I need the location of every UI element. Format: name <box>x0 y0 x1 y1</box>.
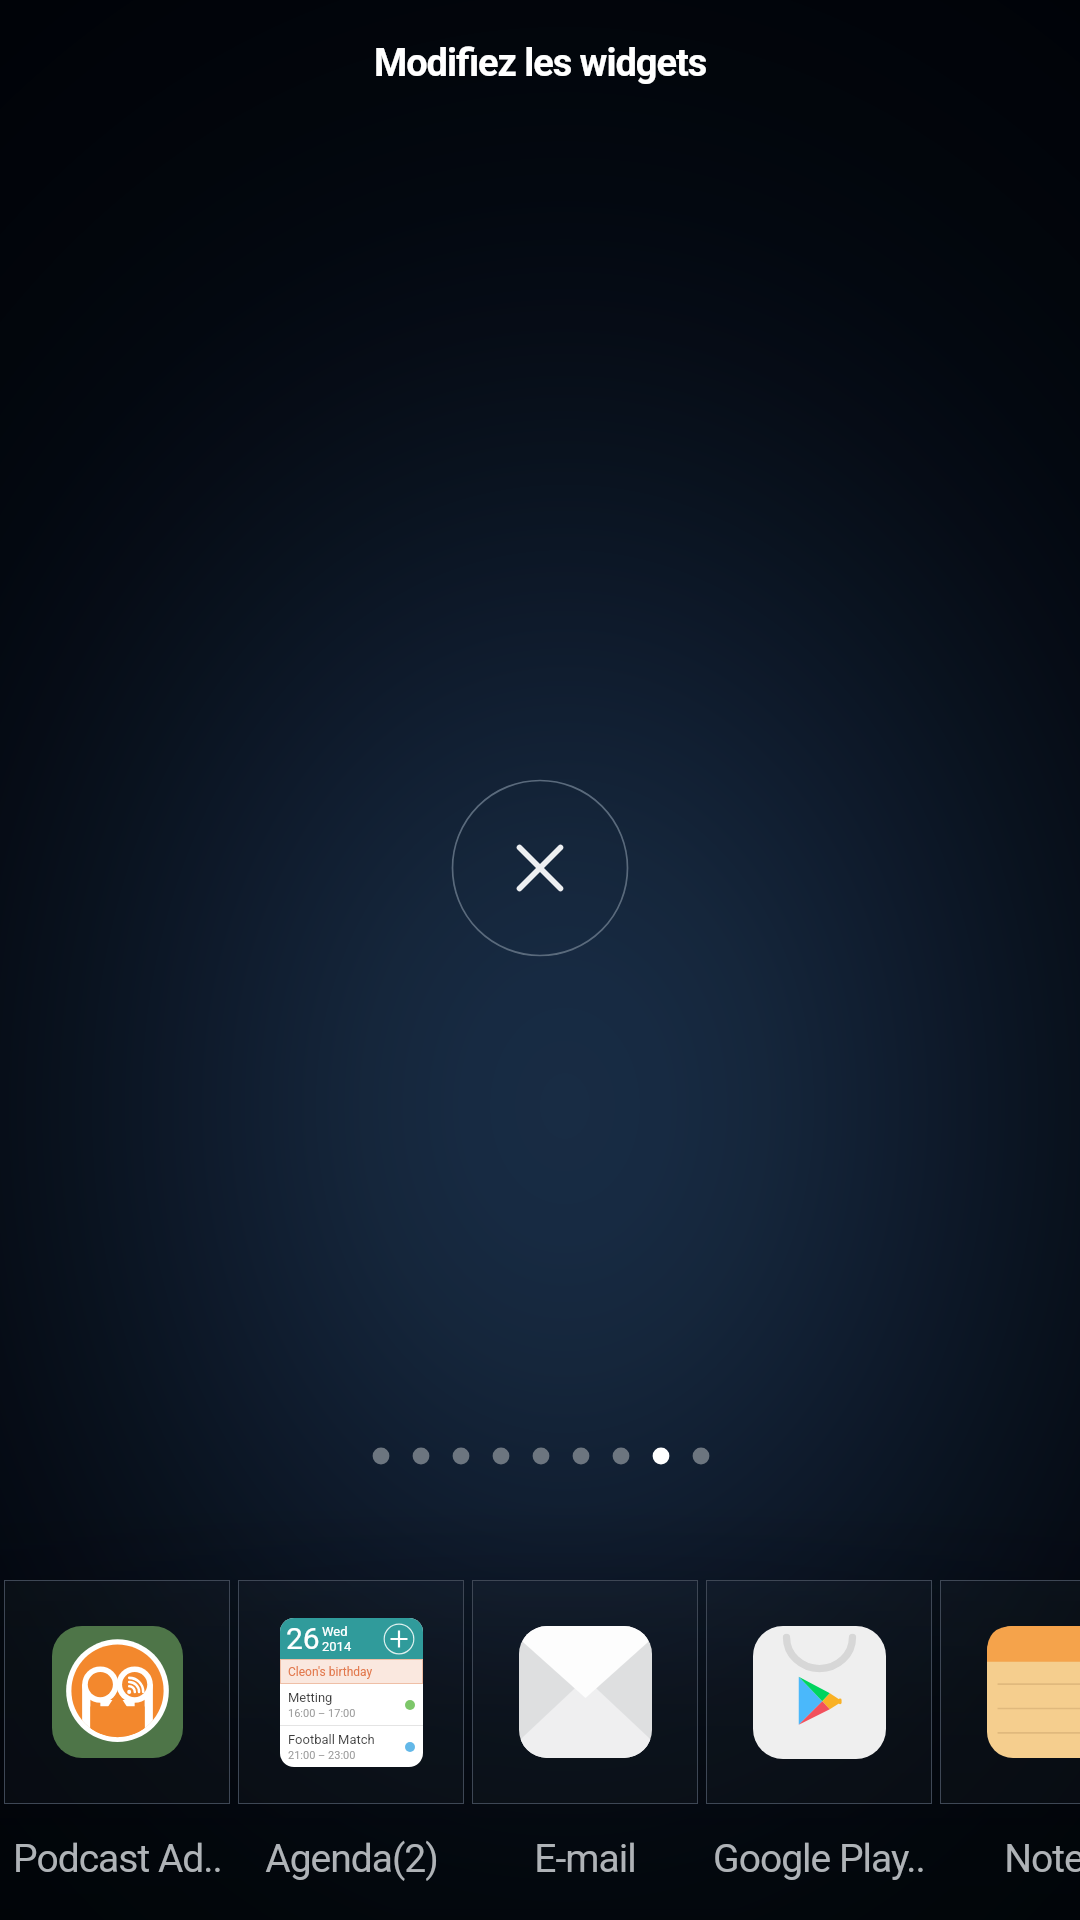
staticText: 21:00 – 23:00 <box>288 1749 356 1762</box>
staticText: Modifiez les widgets <box>374 41 707 86</box>
staticText: E-mail <box>534 1836 636 1882</box>
staticText: Football Match <box>288 1732 375 1747</box>
staticText: Cleon's birthday <box>288 1665 373 1679</box>
staticText: Wed <box>322 1624 348 1639</box>
staticText: Notes <box>1004 1836 1080 1882</box>
staticText: Google Play.. <box>713 1836 925 1882</box>
button[interactable]: Fermer <box>451 779 629 957</box>
button[interactable]: Google Play.. <box>706 1580 932 1885</box>
button[interactable]: E-mail <box>472 1580 698 1885</box>
staticText: 16:00 – 17:00 <box>288 1707 356 1720</box>
other: Pages <box>357 1443 725 1469</box>
button[interactable]: 26 <box>238 1580 464 1885</box>
staticText: Agenda(2) <box>265 1836 438 1882</box>
staticText: Metting <box>288 1690 333 1705</box>
staticText: Podcast Ad.. <box>13 1836 222 1882</box>
staticText: 26 <box>286 1621 320 1656</box>
button[interactable]: Notes <box>940 1580 1080 1885</box>
button[interactable]: Podcast Ad.. <box>4 1580 230 1885</box>
staticText: 2014 <box>322 1639 352 1654</box>
